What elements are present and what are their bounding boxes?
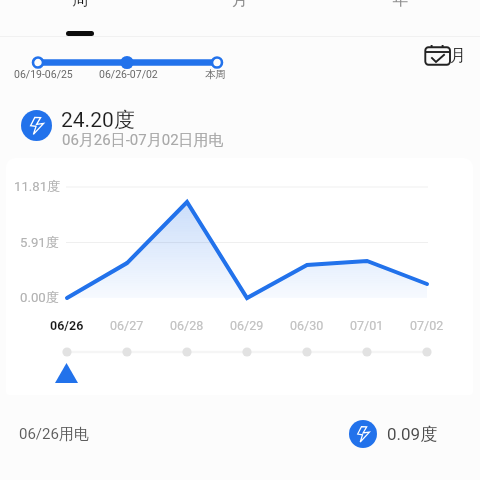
staticText: 06/27: [110, 318, 144, 333]
button[interactable]: 月: [160, 0, 320, 36]
staticText: 月: [232, 0, 248, 10]
staticText: 06/29: [230, 318, 264, 333]
staticText: 年: [392, 0, 408, 10]
button[interactable]: 06/29: [225, 315, 269, 335]
button[interactable]: 06/30: [285, 315, 329, 335]
staticText: 06月26日-07月02日用电: [62, 131, 224, 150]
button[interactable]: 06/27: [105, 315, 149, 335]
staticText: 5.91度: [20, 234, 59, 251]
staticText: 06/26-07/02: [99, 68, 158, 80]
button[interactable]: 年: [320, 0, 480, 36]
staticText: 07/02: [410, 318, 444, 333]
staticText: 0.09度: [387, 424, 438, 445]
staticText: 周: [72, 0, 88, 10]
button[interactable]: 06/26用电: [0, 408, 480, 460]
button[interactable]: 06/28: [165, 315, 209, 335]
staticText: 07/01: [350, 318, 384, 333]
staticText: 24.20度: [61, 107, 135, 133]
staticText: 本周: [205, 68, 226, 81]
staticText: 月: [450, 46, 466, 66]
staticText: 0.00度: [20, 289, 59, 306]
staticText: 06/26用电: [19, 425, 89, 444]
button[interactable]: Pick month: [424, 44, 466, 66]
staticText: 06/28: [170, 318, 204, 333]
button[interactable]: 06/26: [45, 315, 89, 335]
staticText: 11.81度: [14, 178, 61, 195]
button[interactable]: 07/02: [405, 315, 449, 335]
staticText: 06/30: [290, 318, 324, 333]
button[interactable]: 07/01: [345, 315, 389, 335]
button[interactable]: 周: [0, 0, 160, 36]
staticText: 06/19-06/25: [14, 68, 73, 80]
staticText: 06/26: [50, 318, 84, 333]
